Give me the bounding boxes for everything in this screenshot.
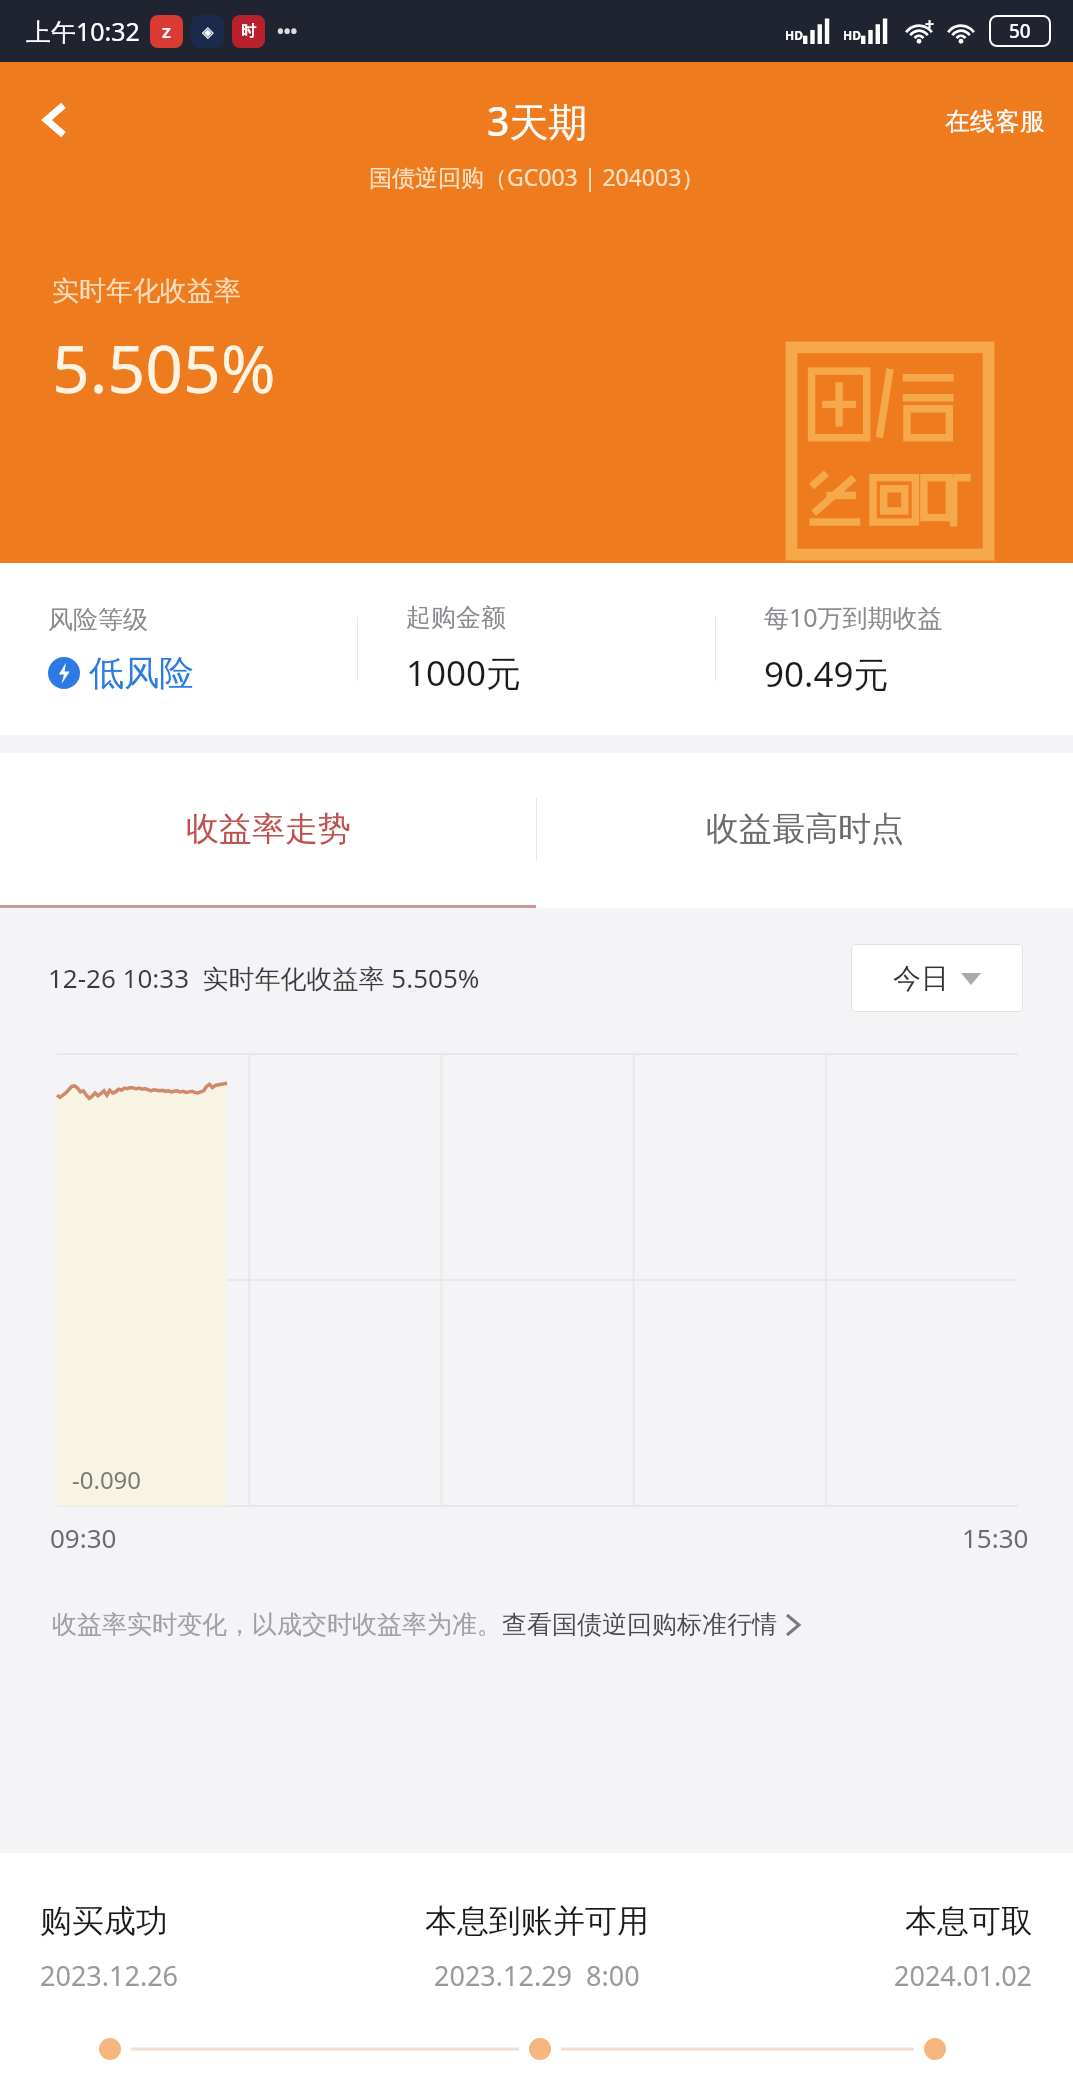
- button[interactable]: 收益率实时变化，以成交时收益率为准。: [52, 1609, 1073, 1640]
- staticText: 3天期: [487, 94, 588, 147]
- staticText: 购买成功: [40, 1901, 168, 1941]
- staticText: 起购金额: [406, 602, 506, 633]
- staticText: 风险等级: [48, 604, 148, 635]
- button[interactable]: 收益率走势: [0, 753, 536, 905]
- staticText: 每10万到期收益: [764, 600, 943, 634]
- staticText: 50: [1009, 18, 1031, 44]
- staticText: 时: [241, 22, 256, 41]
- staticText: Z: [162, 22, 171, 42]
- staticText: 90.49元: [764, 650, 889, 698]
- staticText: 09:30: [50, 1520, 117, 1555]
- staticText: ◈: [202, 23, 214, 40]
- staticText: 收益率实时变化，以成交时收益率为准。: [52, 1609, 502, 1640]
- staticText: HD: [843, 27, 861, 43]
- staticText: 上午10:32: [26, 14, 140, 48]
- staticText: +: [925, 13, 935, 35]
- staticText: HD: [785, 27, 803, 43]
- staticText: 12-26 10:33 实时年化收益率 5.505%: [48, 960, 480, 996]
- staticText: 2024.01.02: [894, 1957, 1033, 1994]
- staticText: 5.505%: [52, 322, 276, 412]
- staticText: 15:30: [962, 1520, 1029, 1555]
- staticText: •••: [277, 19, 298, 44]
- staticText: 在线客服: [945, 106, 1045, 137]
- staticText: 收益率走势: [186, 808, 351, 850]
- staticText: -0.090: [72, 1463, 142, 1496]
- button[interactable]: 今日: [851, 944, 1023, 1012]
- staticText: 实时年化收益率: [52, 274, 241, 308]
- staticText: 收益最高时点: [706, 808, 904, 850]
- staticText: 今日: [893, 961, 949, 996]
- button[interactable]: Back: [18, 82, 94, 158]
- staticText: 2023.12.26: [40, 1957, 179, 1994]
- button[interactable]: 收益最高时点: [537, 753, 1073, 905]
- staticText: 低风险: [89, 651, 194, 695]
- staticText: 本息到账并可用: [425, 1901, 649, 1941]
- button[interactable]: 在线客服: [939, 100, 1051, 143]
- staticText: 1000元: [406, 649, 522, 697]
- staticText: 查看国债逆回购标准行情: [502, 1609, 777, 1640]
- staticText: 本息可取: [905, 1901, 1033, 1941]
- staticText: 2023.12.29 8:00: [434, 1957, 640, 1994]
- staticText: 国债逆回购（GC003 | 204003）: [369, 161, 705, 192]
